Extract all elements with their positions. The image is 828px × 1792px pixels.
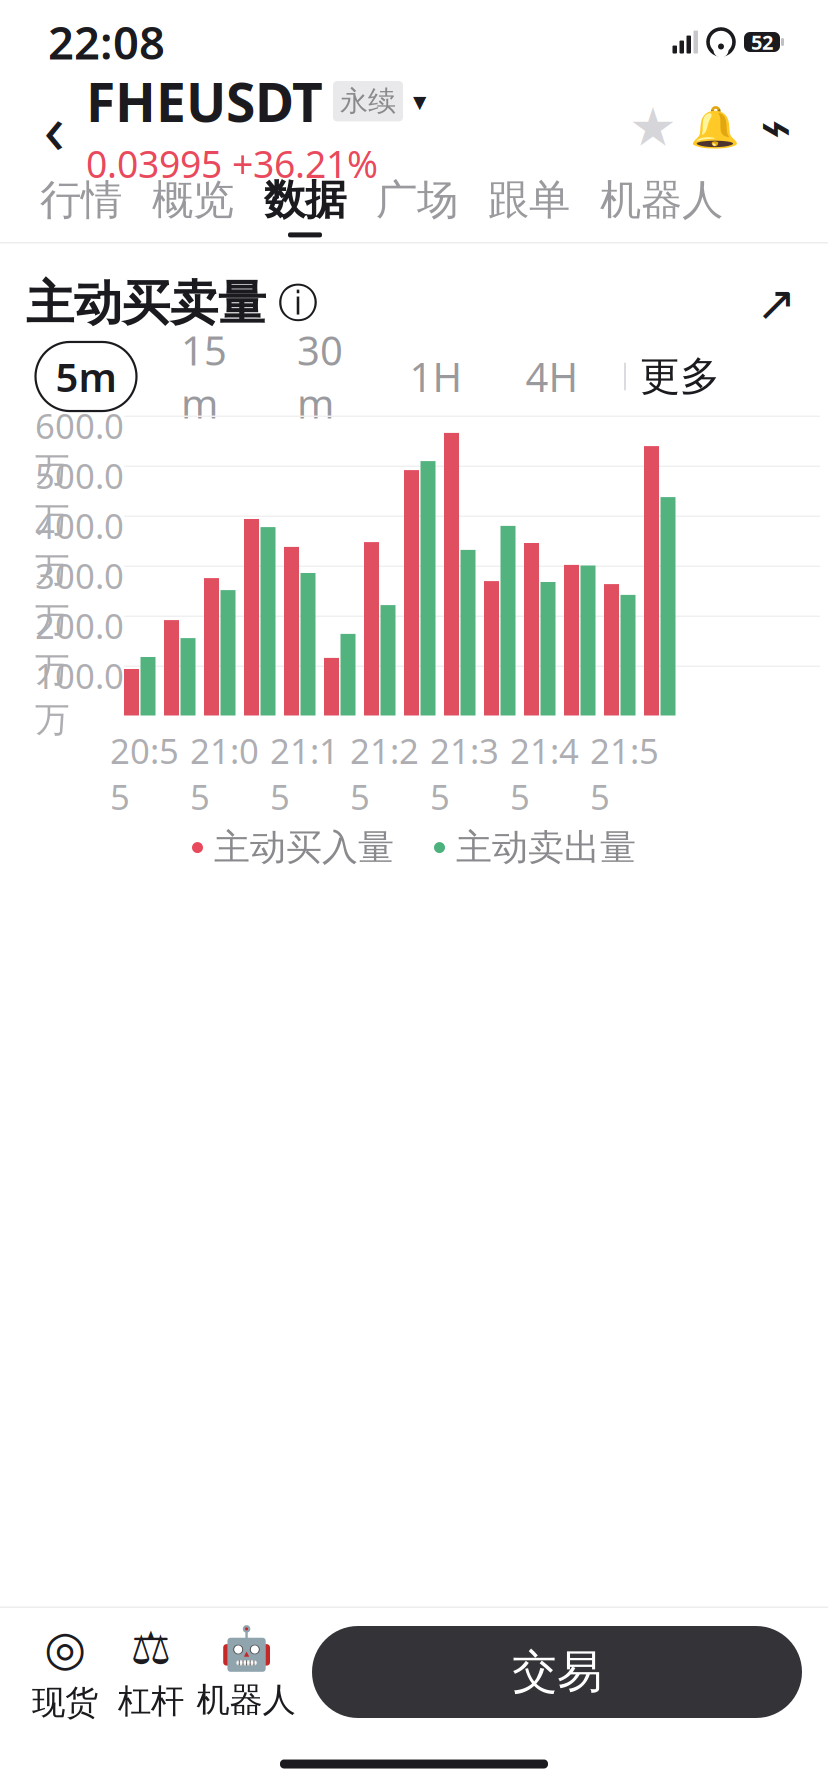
button[interactable]: 行情 [25,170,137,242]
button[interactable]: ◎ [22,1621,108,1723]
button[interactable]: 15m [146,315,262,438]
staticText: 机器人 [196,1679,295,1720]
staticText: 21:25 [350,727,419,820]
staticText: 100.0万 [35,652,124,741]
staticText: ⌁ [760,97,792,157]
staticText: 400.0万 [35,502,124,591]
staticText: 600.0万 [35,402,124,491]
button[interactable]: 机器人 [585,170,738,242]
button[interactable]: 交易 [312,1626,802,1718]
staticText: ◎ [44,1621,86,1675]
button[interactable]: 跟单 [473,170,585,242]
staticText: 0.03995 +36.21% [86,139,378,188]
button[interactable]: 5m [26,342,146,411]
staticText: ★ [629,97,677,157]
button[interactable]: 数据 [249,170,361,242]
staticText: ⓘ [266,279,318,328]
staticText: 更多 [640,352,720,401]
staticText: 21:35 [430,727,499,820]
staticText: 20:55 [110,727,179,820]
button[interactable]: Favorite [622,92,684,162]
button[interactable]: ⚖ [108,1622,194,1722]
button[interactable]: 广场 [361,170,473,242]
staticText: 杠杆 [118,1681,184,1722]
staticText: ▾ [413,86,426,116]
button[interactable]: 更多 [640,352,720,401]
button[interactable]: 4H [494,342,610,411]
staticText: 21:05 [190,727,259,820]
button[interactable]: 概览 [137,170,249,242]
staticText: 200.0万 [35,602,124,691]
staticText: 5m [55,350,116,403]
button[interactable]: 30m [262,315,378,438]
staticText: 主动买卖量 [26,274,266,333]
staticText: 21:15 [270,727,339,820]
staticText: FHEUSDT [86,66,323,137]
staticText: 500.0万 [35,452,124,541]
staticText: 永续 [340,84,396,118]
staticText: 🤖 [219,1624,272,1672]
staticText: 15m [181,323,227,430]
staticText: 21:55 [590,727,659,820]
button[interactable]: Back [22,90,86,164]
button[interactable]: Price alert [684,92,746,162]
staticText: 主动买入量 [203,825,394,870]
staticText: 交易 [512,1644,602,1700]
staticText: 300.0万 [35,552,124,641]
button[interactable]: 🤖 [194,1624,298,1720]
staticText: 52 [751,29,773,55]
staticText: 行情 [40,175,122,225]
staticText: 1H [409,350,462,403]
staticText: 现货 [32,1682,98,1723]
staticText: 22:08 [48,12,165,72]
button[interactable]: Expand chart [750,277,802,329]
staticText: 跟单 [488,175,570,225]
staticText: 机器人 [600,175,723,225]
button[interactable]: Share [746,92,806,162]
staticText: ‹ [43,81,64,173]
staticText: 广场 [376,175,458,225]
staticText: 数据 [264,175,346,225]
staticText: 30m [297,323,343,430]
button[interactable]: 1H [378,342,494,411]
staticText: ⚖ [130,1622,171,1674]
staticText: 4H [525,350,578,403]
staticText: 21:45 [510,727,579,820]
staticText: 概览 [152,175,234,225]
staticText: 🔔 [690,104,740,150]
staticText: 主动卖出量 [445,825,636,870]
staticText: ↗ [756,276,796,331]
